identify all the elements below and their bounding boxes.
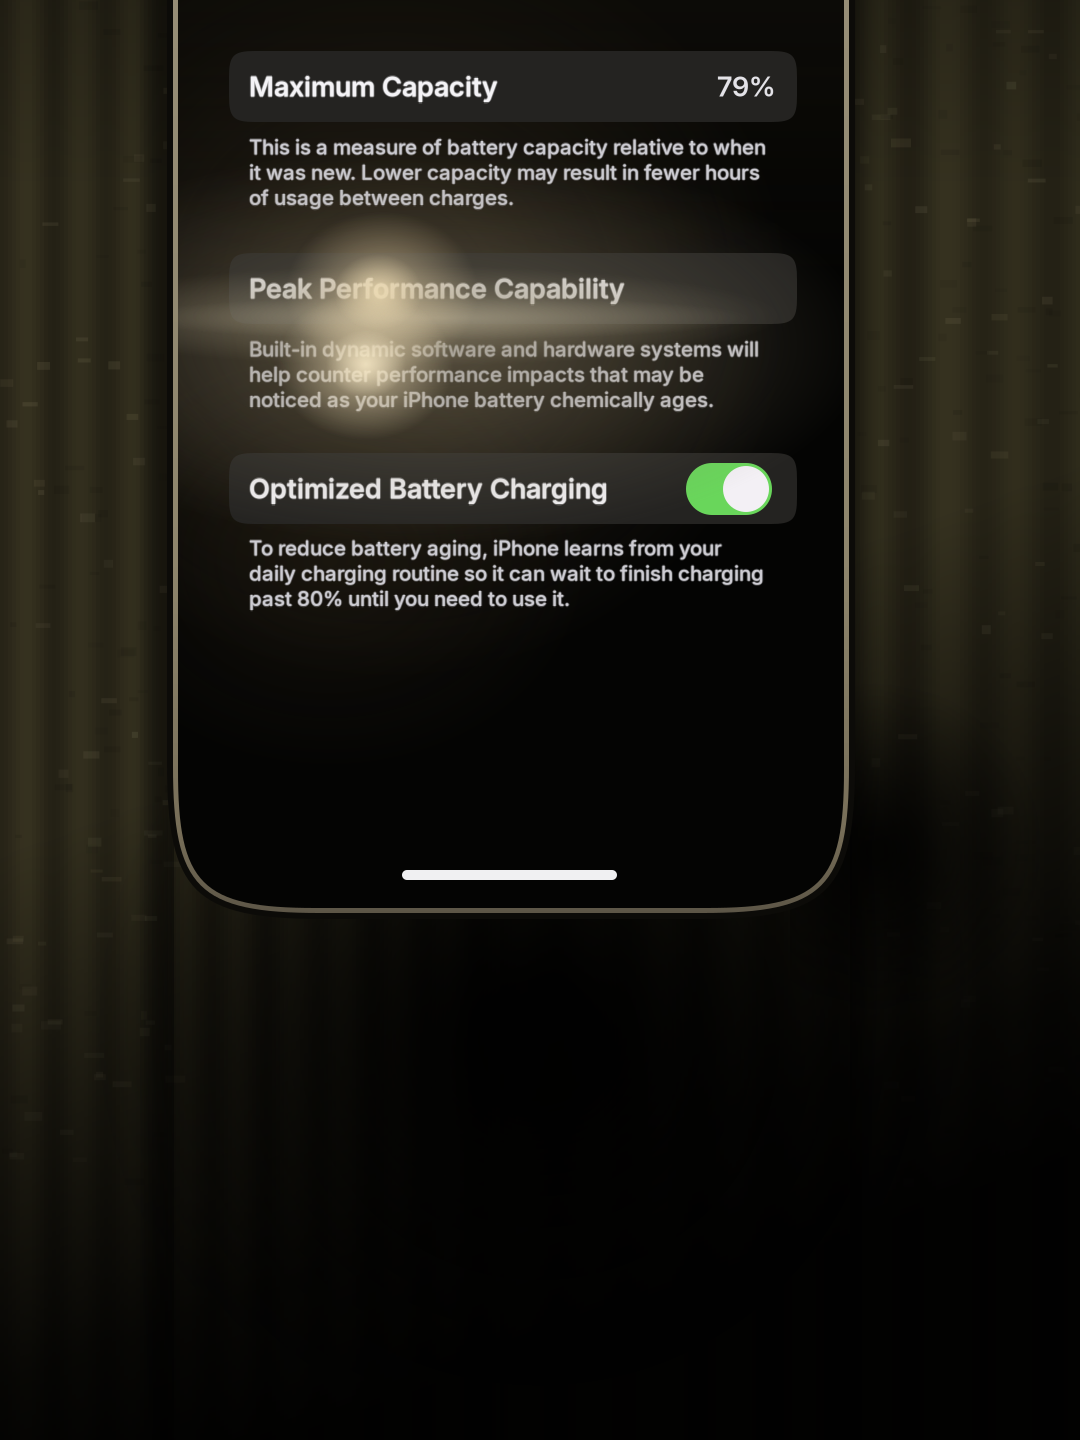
staticText: This is a measure of battery capacity re… [249, 133, 766, 158]
staticText: of usage between charges. [248, 185, 513, 210]
staticText: To reduce battery aging, iPhone learns f… [248, 536, 721, 560]
staticText: Optimized Battery Charging [249, 472, 608, 505]
staticText: Maximum Capacity [249, 70, 498, 103]
staticText: Optimized Battery Charging [248, 472, 607, 505]
staticText: Built-in dynamic software and hardware s… [249, 338, 759, 362]
staticText: Peak Performance Capability [249, 272, 625, 305]
staticText: help counter performance impacts that ma… [248, 362, 703, 387]
staticText: of usage between charges. [249, 185, 514, 210]
staticText: noticed as your iPhone battery chemicall… [250, 387, 715, 412]
staticText: help counter performance impacts that ma… [249, 362, 704, 387]
staticText: daily charging routine so it can wait to… [248, 561, 763, 586]
staticText: noticed as your iPhone battery chemicall… [249, 388, 714, 413]
staticText: it was new. Lower capacity may result in… [248, 160, 759, 185]
staticText: Peak Performance Capability [250, 272, 626, 305]
staticText: Maximum Capacity [249, 69, 498, 102]
staticText: past 80% until you need to use it. [248, 586, 569, 611]
staticText: past 80% until you need to use it. [249, 587, 570, 612]
staticText: To reduce battery aging, iPhone learns f… [250, 536, 723, 560]
staticText: Built-in dynamic software and hardware s… [248, 337, 758, 361]
staticText: noticed as your iPhone battery chemicall… [249, 387, 714, 412]
staticText: help counter performance impacts that ma… [250, 362, 705, 387]
staticText: help counter performance impacts that ma… [249, 361, 704, 386]
staticText: of usage between charges. [249, 186, 514, 211]
staticText: 79% [717, 70, 775, 103]
staticText: it was new. Lower capacity may result in… [249, 159, 760, 184]
staticText: Peak Performance Capability [249, 273, 625, 306]
staticText: help counter performance impacts that ma… [249, 363, 704, 388]
staticText: This is a measure of battery capacity re… [250, 135, 767, 159]
staticText: of usage between charges. [250, 185, 515, 210]
staticText: Built-in dynamic software and hardware s… [249, 335, 759, 360]
button[interactable]: Optimized Battery Charging [178, 0, 844, 908]
staticText: past 80% until you need to use it. [249, 586, 570, 611]
staticText: Built-in dynamic software and hardware s… [250, 337, 760, 361]
staticText: daily charging routine so it can wait to… [249, 561, 764, 586]
staticText: it was new. Lower capacity may result in… [249, 161, 760, 186]
staticText: past 80% until you need to use it. [249, 585, 570, 610]
staticText: To reduce battery aging, iPhone learns f… [249, 536, 722, 560]
staticText: noticed as your iPhone battery chemicall… [249, 386, 714, 411]
staticText: past 80% until you need to use it. [250, 586, 571, 611]
staticText: it was new. Lower capacity may result in… [249, 160, 760, 185]
staticText: it was new. Lower capacity may result in… [250, 160, 761, 185]
staticText: This is a measure of battery capacity re… [248, 135, 765, 159]
staticText: To reduce battery aging, iPhone learns f… [249, 537, 722, 561]
staticText: Peak Performance Capability [248, 272, 624, 305]
staticText: daily charging routine so it can wait to… [250, 561, 765, 586]
staticText: Maximum Capacity [249, 71, 498, 104]
staticText: This is a measure of battery capacity re… [249, 135, 766, 159]
staticText: Maximum Capacity [248, 70, 497, 103]
staticText: This is a measure of battery capacity re… [249, 136, 766, 160]
staticText: Optimized Battery Charging [250, 472, 609, 505]
staticText: Maximum Capacity [250, 70, 499, 103]
staticText: Optimized Battery Charging [249, 473, 608, 506]
staticText: of usage between charges. [249, 184, 514, 209]
button[interactable]: Peak Performance Capability [178, 0, 844, 908]
staticText: Built-in dynamic software and hardware s… [249, 337, 759, 361]
staticText: Peak Performance Capability [249, 271, 625, 304]
staticText: To reduce battery aging, iPhone learns f… [249, 534, 722, 559]
staticText: noticed as your iPhone battery chemicall… [248, 387, 713, 412]
staticText: Optimized Battery Charging [249, 471, 608, 504]
button[interactable]: Maximum Capacity [178, 0, 844, 908]
staticText: daily charging routine so it can wait to… [249, 562, 764, 587]
staticText: daily charging routine so it can wait to… [249, 560, 764, 585]
